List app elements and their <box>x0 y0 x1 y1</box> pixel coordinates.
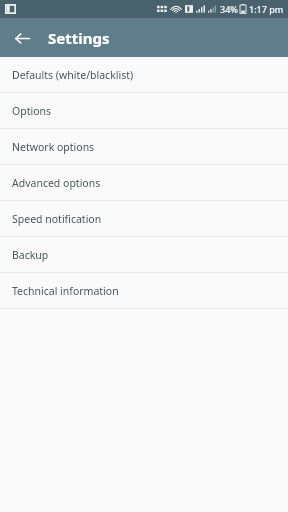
staticText: 1:17 pm <box>249 3 284 15</box>
button[interactable]: Options <box>0 93 288 128</box>
staticText: Advanced options <box>12 176 101 190</box>
staticText: 34% <box>220 3 238 15</box>
button[interactable]: Network options <box>0 129 288 164</box>
staticText: Network options <box>12 140 95 154</box>
staticText: Defaults (white/blacklist) <box>12 68 134 82</box>
button[interactable]: Back <box>8 24 36 52</box>
staticText: Options <box>12 104 52 118</box>
staticText: Settings <box>48 28 110 48</box>
staticText: Backup <box>12 248 49 262</box>
button[interactable]: Defaults (white/blacklist) <box>0 57 288 92</box>
button[interactable]: Technical information <box>0 273 288 308</box>
button[interactable]: Speed notification <box>0 201 288 236</box>
button[interactable]: Backup <box>0 237 288 272</box>
staticText: Technical information <box>12 284 119 298</box>
button[interactable]: Advanced options <box>0 165 288 200</box>
staticText: Speed notification <box>12 212 102 226</box>
